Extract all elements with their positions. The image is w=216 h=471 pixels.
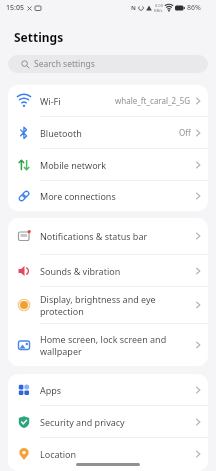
staticText: Notifications & status bar (40, 230, 194, 242)
staticText: Bluetooth (40, 127, 179, 139)
button[interactable]: Notifications & status bar (8, 218, 208, 254)
staticText: Wi-Fi (40, 95, 115, 107)
staticText: Settings (14, 29, 64, 45)
button[interactable]: Sounds & vibration (8, 255, 208, 286)
staticText: Off (179, 127, 191, 138)
staticText: 86% (187, 3, 201, 13)
staticText: More connections (40, 190, 194, 202)
staticText: whale_ft_caral_2_5G (115, 95, 191, 106)
button[interactable]: Wi-Fi (8, 85, 208, 116)
staticText: 0.00 (155, 3, 163, 8)
button[interactable]: Search settings (8, 55, 208, 73)
button[interactable]: Location (8, 438, 208, 469)
staticText: Home screen, lock screen and wallpaper (40, 333, 194, 357)
button[interactable]: Mobile network (8, 149, 208, 180)
staticText: 15:05 (6, 3, 24, 13)
button[interactable]: Security and privacy (8, 406, 208, 437)
staticText: Location (40, 448, 194, 460)
button[interactable]: Display, brightness and eye protection (8, 287, 208, 323)
staticText: Mobile network (40, 159, 194, 171)
staticText: Search settings (34, 58, 95, 70)
button[interactable]: Bluetooth (8, 117, 208, 148)
staticText: KB/s (154, 8, 163, 13)
staticText: N (131, 4, 136, 12)
button[interactable]: More connections (8, 181, 208, 211)
staticText: Apps (40, 384, 194, 396)
staticText: Sounds & vibration (40, 265, 194, 277)
button[interactable]: Home screen, lock screen and wallpaper (8, 324, 208, 366)
staticText: Display, brightness and eye protection (40, 293, 194, 317)
staticText: Security and privacy (40, 416, 194, 428)
button[interactable]: Apps (8, 374, 208, 405)
